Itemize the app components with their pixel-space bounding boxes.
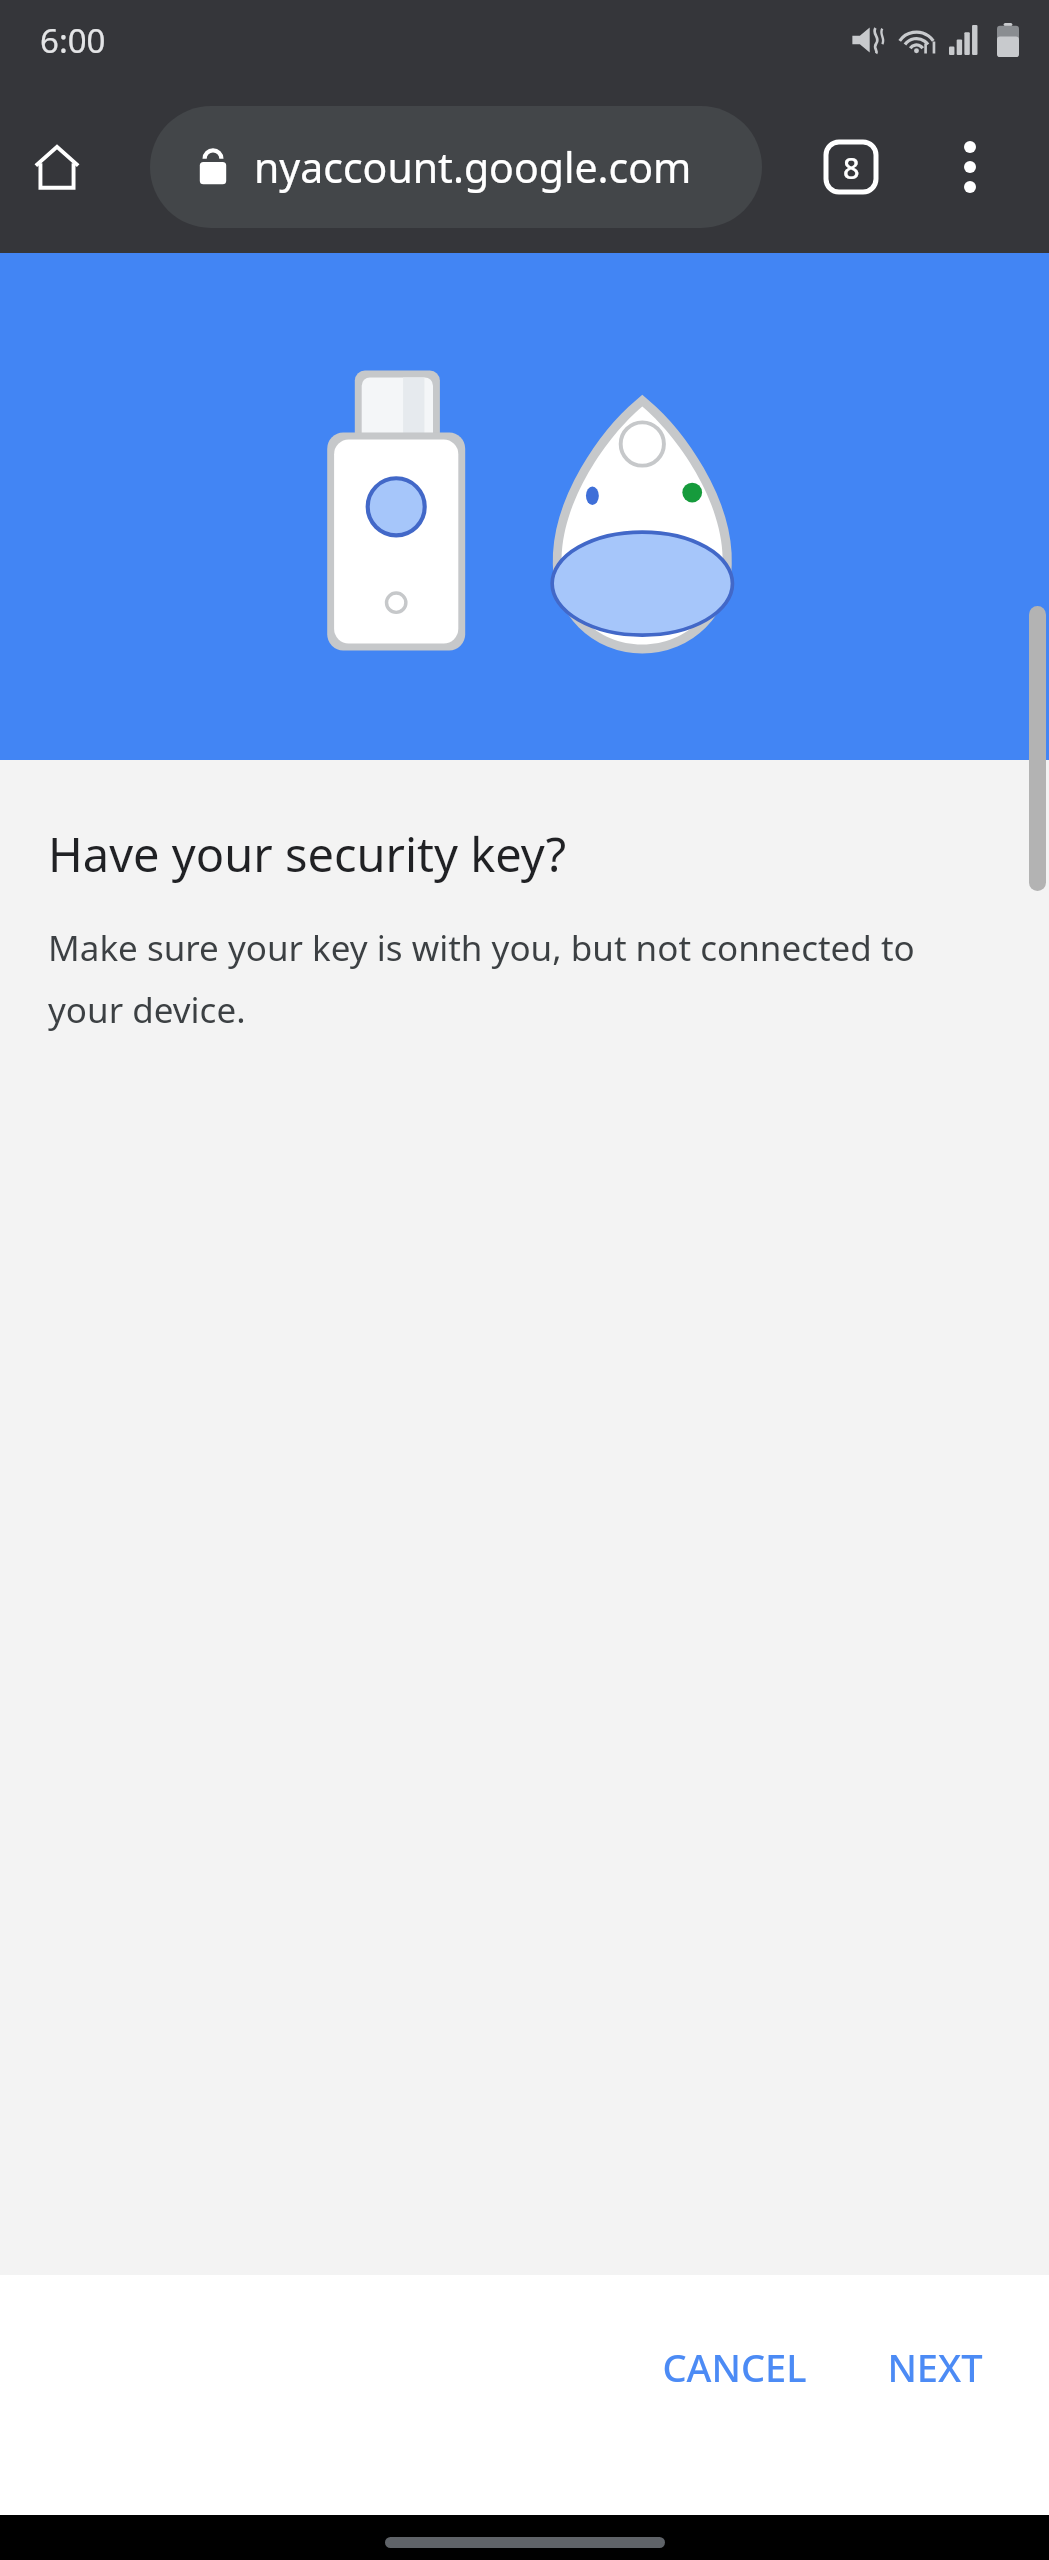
button[interactable]: More options (927, 124, 1013, 210)
button[interactable]: NEXT (859, 2323, 1011, 2411)
button[interactable]: CANCEL (634, 2323, 835, 2411)
button[interactable]: Home (14, 124, 100, 210)
staticText: Have your security key? (48, 822, 567, 886)
staticText: 6:00 (40, 18, 106, 63)
staticText: NEXT (887, 2341, 983, 2393)
staticText: 8 (843, 148, 860, 187)
staticText: Make sure your key is with you, but not … (48, 924, 987, 1033)
staticText: nyaccount.google.com (254, 139, 692, 195)
staticText: CANCEL (662, 2341, 807, 2393)
button[interactable]: nyaccount.google.com (150, 106, 762, 228)
button[interactable]: Switch tabs, 8 open (808, 124, 894, 210)
